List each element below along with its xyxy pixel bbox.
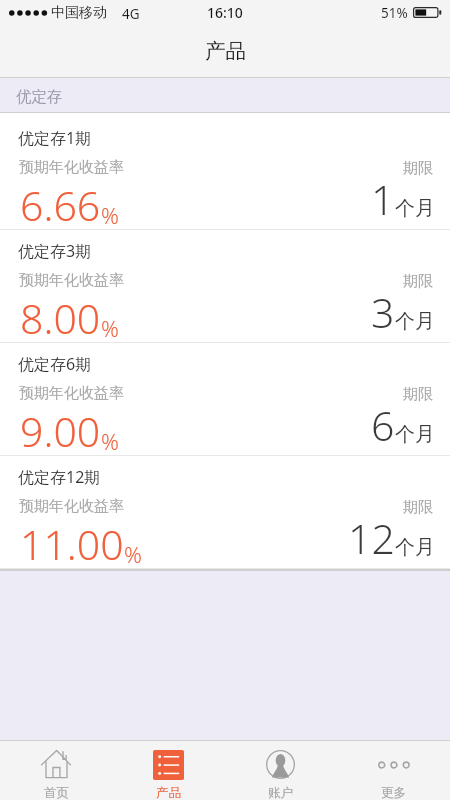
- staticText: 优定存3期: [18, 240, 92, 262]
- staticText: 优定存: [16, 87, 63, 107]
- staticText: 产品: [156, 785, 181, 800]
- button[interactable]: 优定存6期: [0, 343, 450, 456]
- staticText: 期限: [403, 498, 433, 517]
- staticText: 6: [371, 397, 395, 453]
- staticText: 16:10: [207, 3, 243, 22]
- staticText: 首页: [44, 785, 69, 800]
- staticText: 12: [348, 510, 395, 566]
- staticText: 预期年化收益率: [19, 158, 124, 177]
- staticText: 期限: [403, 385, 433, 404]
- button[interactable]: Account: [224, 741, 337, 800]
- staticText: 账户: [268, 785, 293, 800]
- staticText: 51%: [381, 4, 408, 22]
- button[interactable]: 优定存3期: [0, 230, 450, 343]
- staticText: %: [101, 313, 119, 343]
- staticText: 个月: [395, 196, 435, 221]
- button[interactable]: Products: [112, 741, 224, 800]
- staticText: 11.00: [20, 516, 124, 572]
- staticText: 个月: [395, 309, 435, 334]
- staticText: %: [101, 426, 119, 456]
- staticText: 9.00: [20, 403, 101, 459]
- staticText: 产品: [205, 38, 246, 64]
- staticText: 优定存12期: [18, 466, 101, 488]
- button[interactable]: 优定存12期: [0, 456, 450, 569]
- staticText: 个月: [395, 422, 435, 447]
- staticText: 6.66: [20, 177, 101, 233]
- staticText: 中国移动: [51, 4, 107, 22]
- staticText: %: [101, 200, 119, 230]
- staticText: 期限: [403, 159, 433, 178]
- staticText: 4G: [122, 5, 140, 23]
- staticText: 个月: [395, 535, 435, 560]
- staticText: 8.00: [20, 290, 101, 346]
- staticText: 期限: [403, 272, 433, 291]
- staticText: 1: [371, 171, 395, 227]
- staticText: 优定存6期: [18, 353, 92, 375]
- staticText: 更多: [381, 785, 406, 800]
- staticText: 预期年化收益率: [19, 271, 124, 290]
- staticText: %: [124, 539, 142, 569]
- staticText: 优定存1期: [18, 127, 92, 149]
- button[interactable]: More: [337, 741, 450, 800]
- button[interactable]: Home: [0, 741, 112, 800]
- staticText: 预期年化收益率: [19, 384, 124, 403]
- staticText: 预期年化收益率: [19, 497, 124, 516]
- button[interactable]: 优定存1期: [0, 117, 450, 230]
- staticText: 3: [371, 284, 395, 340]
